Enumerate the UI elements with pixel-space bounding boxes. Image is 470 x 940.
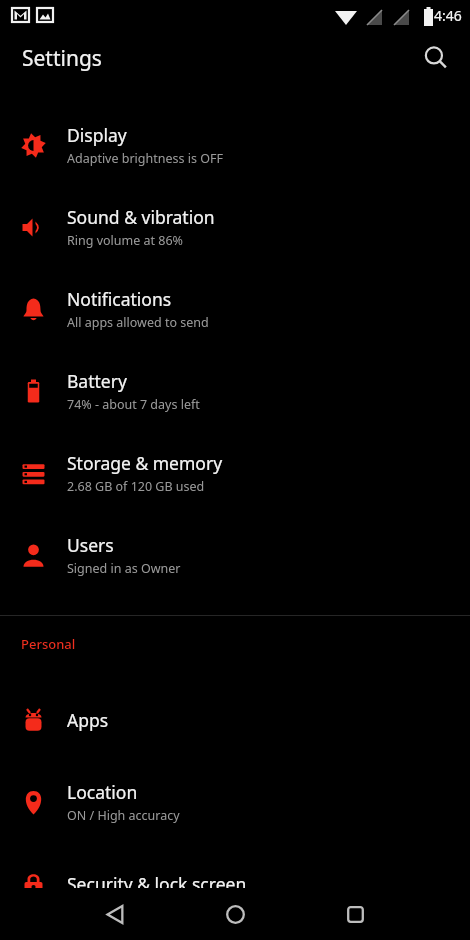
staticText: Notifications — [67, 287, 172, 311]
staticText: Battery — [67, 369, 127, 393]
button[interactable]: Security & lock screen — [0, 843, 470, 925]
staticText: Sound & vibration — [67, 205, 215, 229]
staticText: Storage & memory — [67, 451, 223, 475]
button[interactable]: Display — [0, 104, 470, 186]
button[interactable]: Sound & vibration — [0, 186, 470, 268]
staticText: 4:46 — [434, 6, 462, 25]
staticText: Display — [67, 123, 127, 147]
staticText: Users — [67, 533, 114, 557]
button[interactable]: Search — [412, 34, 460, 82]
staticText: Personal — [21, 635, 76, 653]
button[interactable]: Storage & memory — [0, 432, 470, 514]
button[interactable]: Battery — [0, 350, 470, 432]
staticText: Signed in as Owner — [67, 560, 181, 577]
button[interactable]: Apps — [0, 679, 470, 761]
staticText: Adaptive brightness is OFF — [67, 150, 223, 167]
staticText: 74% - about 7 days left — [67, 396, 200, 413]
staticText: Location — [67, 780, 138, 804]
button[interactable]: Location — [0, 761, 470, 843]
staticText: Security & lock screen — [67, 872, 247, 896]
staticText: Apps — [67, 708, 109, 732]
button[interactable]: Notifications — [0, 268, 470, 350]
button[interactable]: Users — [0, 514, 470, 596]
button[interactable]: Back — [83, 888, 147, 940]
staticText: All apps allowed to send — [67, 314, 209, 331]
staticText: ON / High accuracy — [67, 807, 180, 824]
staticText: Settings — [22, 44, 102, 73]
button[interactable]: Home — [203, 888, 267, 940]
staticText: Ring volume at 86% — [67, 232, 183, 249]
staticText: 2.68 GB of 120 GB used — [67, 478, 205, 495]
button[interactable]: Recent apps — [323, 888, 387, 940]
